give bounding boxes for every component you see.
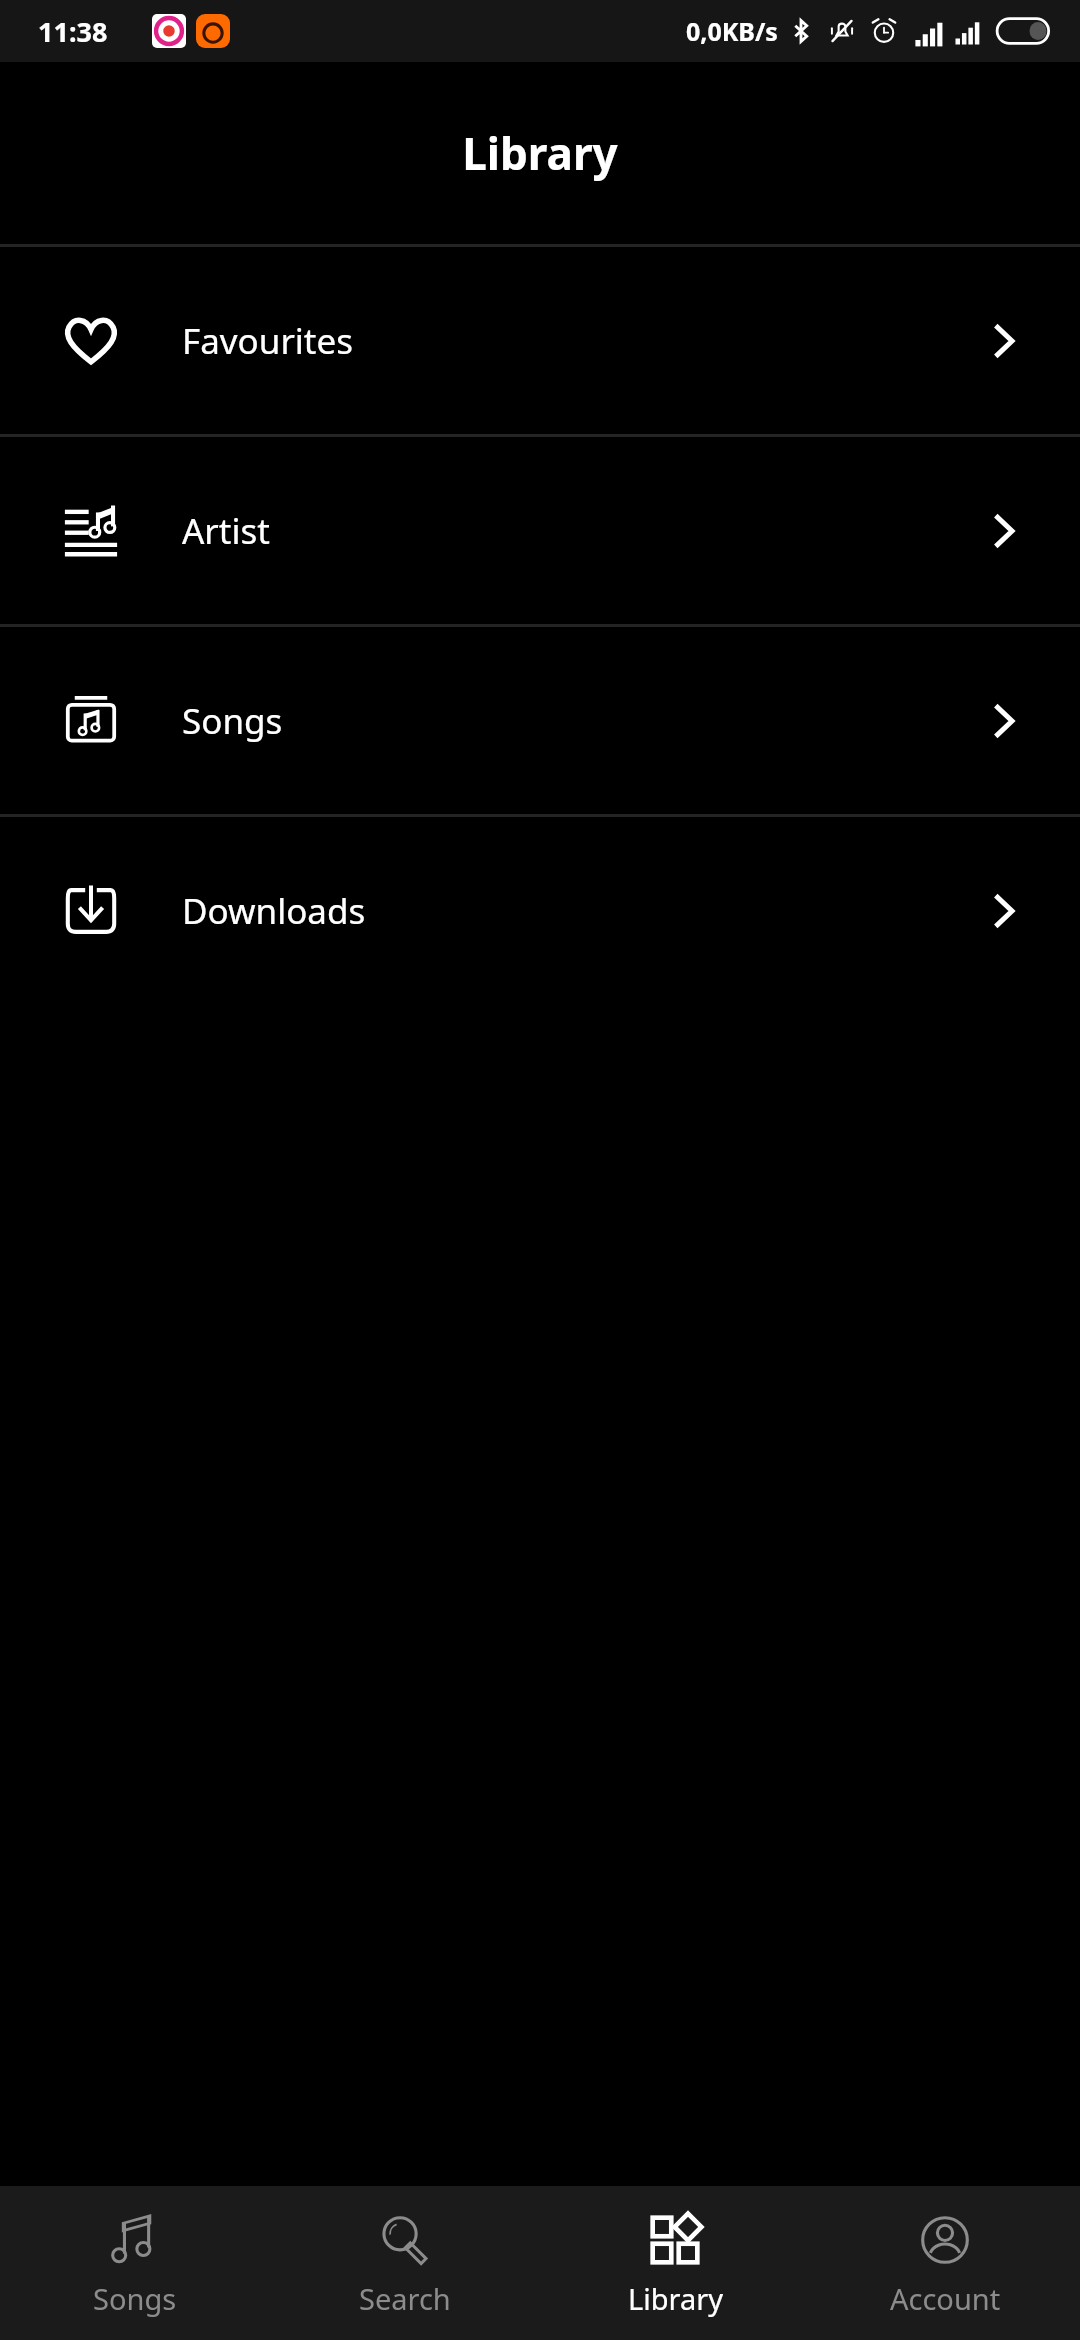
staticText: 11:38: [38, 13, 108, 50]
staticText: Library: [628, 2279, 723, 2318]
button[interactable]: Songs: [0, 627, 1080, 814]
staticText: Songs: [182, 697, 283, 745]
staticText: Artist: [182, 507, 270, 555]
staticText: Account: [890, 2279, 1001, 2318]
button[interactable]: Songs: [0, 2186, 270, 2340]
staticText: Favourites: [182, 317, 354, 365]
button[interactable]: Favourites: [0, 247, 1080, 434]
staticText: Library: [462, 123, 618, 183]
staticText: 0,0KB/s: [686, 14, 778, 48]
button[interactable]: Downloads: [0, 817, 1080, 1004]
staticText: Search: [359, 2279, 451, 2318]
button[interactable]: Account: [810, 2186, 1080, 2340]
button[interactable]: Library: [540, 2186, 810, 2340]
staticText: Songs: [93, 2279, 177, 2318]
button[interactable]: Search: [270, 2186, 540, 2340]
staticText: Downloads: [182, 887, 366, 935]
button[interactable]: Artist: [0, 437, 1080, 624]
